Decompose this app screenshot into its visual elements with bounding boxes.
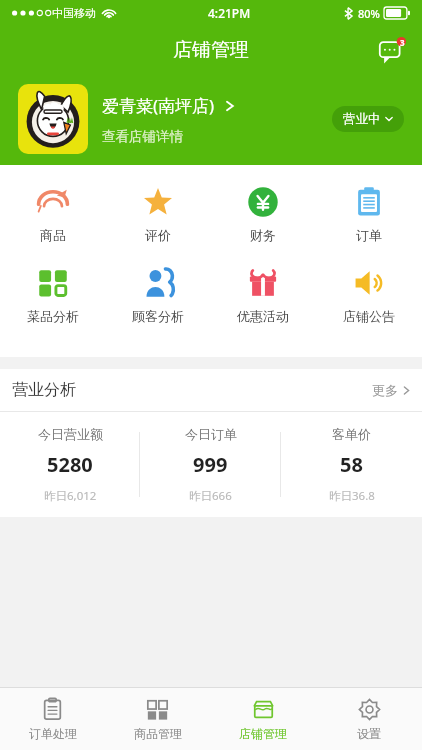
staticText: 顾客分析 [132, 308, 184, 324]
staticText: 今日订单 [185, 426, 237, 442]
button[interactable]: 今日营业额 [0, 412, 140, 517]
button[interactable]: 评价 [105, 179, 210, 250]
button[interactable]: 客单价 [281, 412, 422, 517]
button[interactable]: 订单处理 [0, 688, 105, 750]
button[interactable]: 今日订单 [140, 412, 281, 517]
button[interactable]: 爱青菜(南坪店) [0, 73, 422, 165]
staticText: 商品管理 [134, 726, 182, 741]
staticText: 查看店铺详情 [102, 128, 183, 145]
staticText: 订单 [356, 227, 382, 243]
staticText: 999 [193, 451, 228, 478]
staticText: 设置 [357, 726, 381, 741]
button[interactable]: 优惠活动 [210, 260, 316, 331]
button[interactable]: Messages [376, 33, 410, 67]
staticText: 4:21PM [208, 5, 251, 21]
staticText: 爱青菜(南坪店) [102, 94, 215, 117]
button[interactable]: 商品 [0, 179, 105, 250]
staticText: 财务 [250, 227, 276, 243]
staticText: 昨日36.8 [329, 488, 375, 504]
button[interactable]: 营业分析 [0, 369, 422, 411]
button[interactable]: 店铺公告 [316, 260, 422, 331]
staticText: 昨日666 [189, 488, 232, 504]
button[interactable]: 营业中 [332, 106, 404, 132]
button[interactable]: 财务 [210, 179, 316, 250]
staticText: 优惠活动 [237, 308, 289, 324]
staticText: 更多 [372, 382, 398, 398]
staticText: 营业分析 [12, 380, 76, 400]
staticText: 店铺管理 [173, 38, 249, 62]
staticText: 5280 [47, 451, 93, 478]
staticText: 菜品分析 [27, 308, 79, 324]
staticText: 营业中 [343, 111, 381, 127]
button[interactable]: 菜品分析 [0, 260, 105, 331]
button[interactable]: 店铺管理 [210, 688, 316, 750]
button[interactable]: 商品管理 [105, 688, 210, 750]
staticText: 评价 [145, 227, 171, 243]
staticText: 订单处理 [29, 726, 77, 741]
staticText: 店铺公告 [343, 308, 395, 324]
staticText: 店铺管理 [239, 726, 287, 741]
button[interactable]: 设置 [316, 688, 422, 750]
staticText: 商品 [40, 227, 66, 243]
staticText: 今日营业额 [38, 426, 103, 442]
staticText: 客单价 [332, 426, 371, 442]
staticText: 3 [400, 37, 405, 48]
staticText: 昨日6,012 [44, 488, 97, 504]
button[interactable]: 顾客分析 [105, 260, 210, 331]
staticText: 中国移动 [52, 6, 96, 20]
staticText: 80% [358, 6, 380, 21]
button[interactable]: 订单 [316, 179, 422, 250]
staticText: 58 [340, 451, 363, 478]
